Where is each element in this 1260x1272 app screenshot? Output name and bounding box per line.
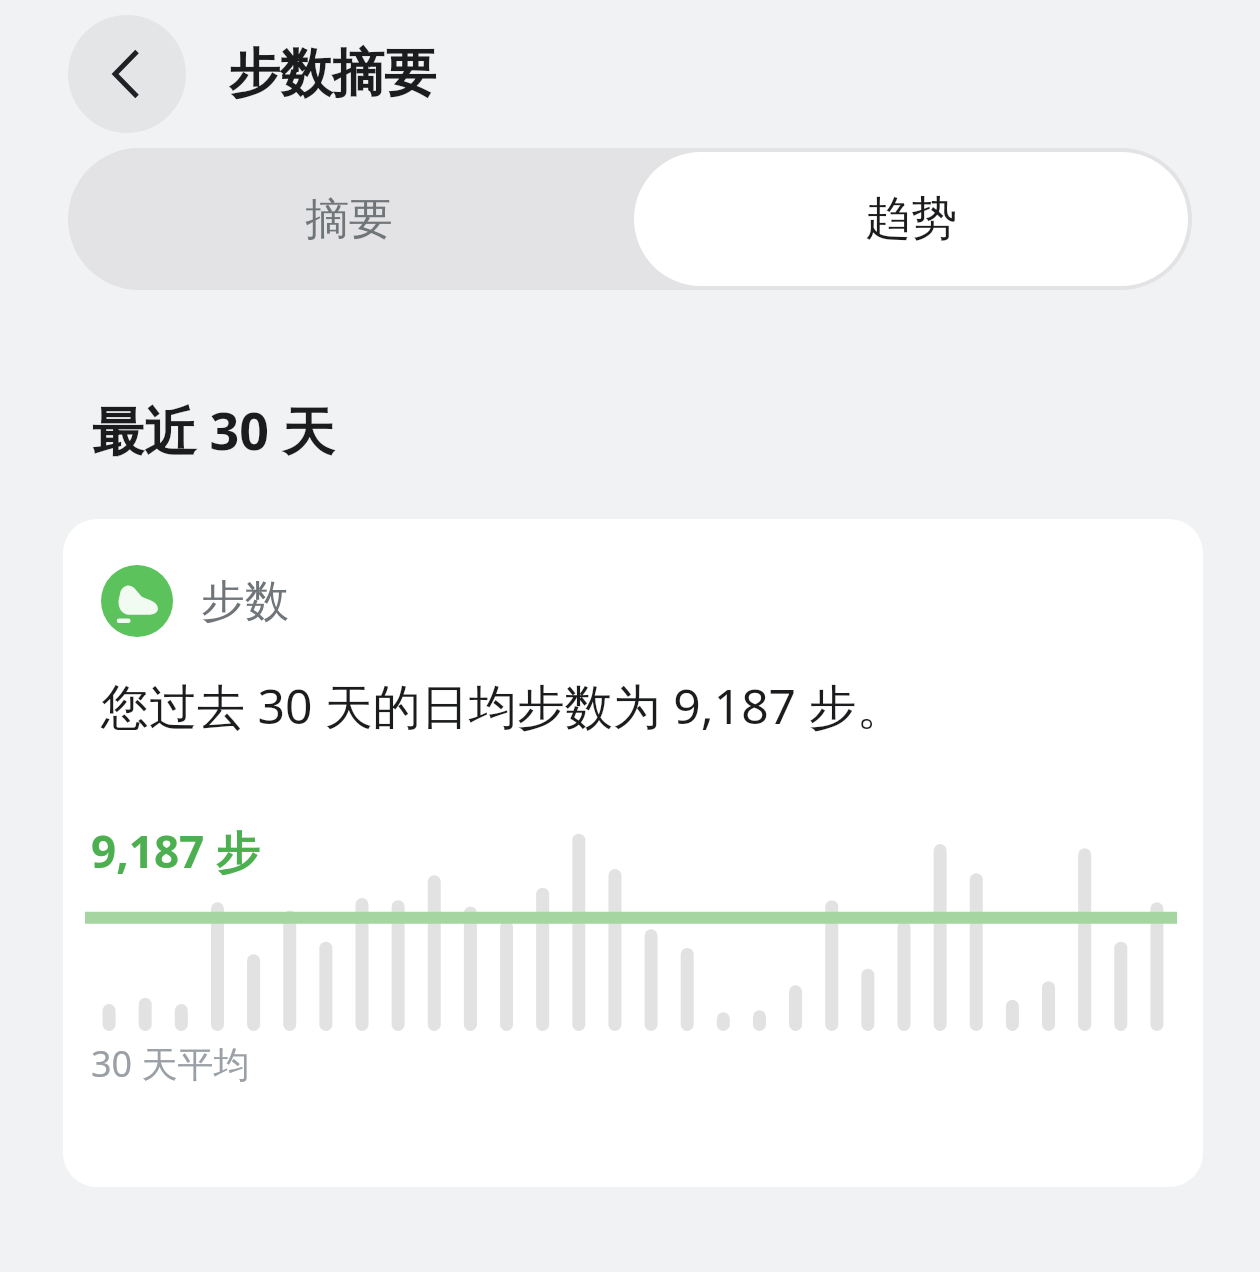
staticText: 步数 [201,574,289,629]
staticText: 步数摘要 [228,41,436,107]
button[interactable]: 摘要 [68,148,630,290]
staticText: 趋势 [865,190,957,248]
button[interactable]: 步数 [63,519,1203,1187]
button[interactable]: Back [68,15,186,133]
staticText: 您过去 30 天的日均步数为 9,187 步。 [101,673,905,739]
staticText: 9,187 步 [91,821,260,881]
staticText: 最近 30 天 [92,394,335,465]
button[interactable]: 趋势 [634,152,1188,286]
staticText: 摘要 [305,192,393,247]
staticText: 30 天平均 [91,1039,250,1088]
